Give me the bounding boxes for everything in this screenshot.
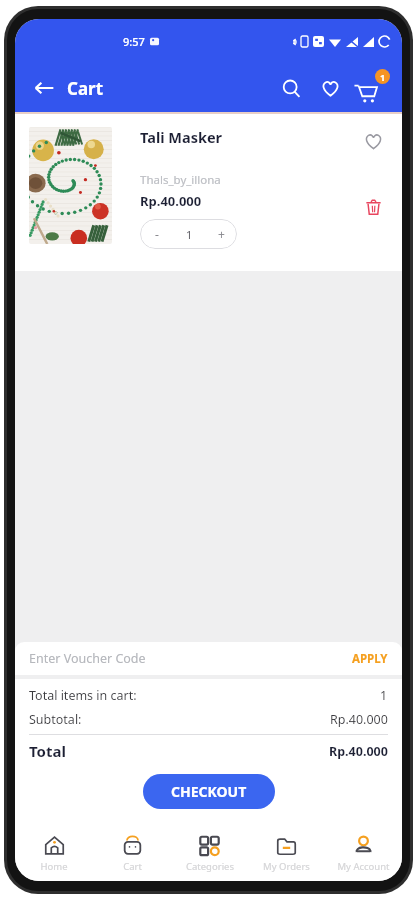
button[interactable]: Decrease quantity: [140, 219, 173, 249]
staticText: 1: [186, 227, 193, 242]
button[interactable]: Increase quantity: [205, 219, 237, 249]
staticText: Total items in cart:: [29, 687, 137, 704]
staticText: Enter Voucher Code: [29, 650, 146, 667]
button[interactable]: APPLY: [352, 642, 388, 675]
button[interactable]: Home: [15, 825, 93, 881]
staticText: Cart: [67, 77, 104, 100]
button[interactable]: Cart: [93, 825, 171, 881]
button[interactable]: Search: [276, 73, 306, 103]
staticText: Categories: [186, 860, 234, 873]
staticText: Subtotal:: [29, 711, 82, 728]
button[interactable]: Wishlist: [315, 73, 345, 103]
button[interactable]: Tali Masker: [15, 114, 402, 271]
staticText: Total: [29, 741, 66, 761]
staticText: My Account: [337, 860, 390, 873]
button[interactable]: Enter Voucher Code: [29, 642, 352, 675]
staticText: APPLY: [352, 651, 388, 667]
staticText: CHECKOUT: [171, 782, 247, 801]
staticText: Rp.40.000: [329, 743, 388, 760]
staticText: -: [155, 226, 159, 242]
button[interactable]: CHECKOUT: [143, 774, 275, 809]
button[interactable]: Back: [31, 75, 104, 101]
staticText: Cart: [123, 860, 142, 873]
button[interactable]: My Account: [325, 825, 402, 881]
button[interactable]: Add to wishlist: [359, 127, 387, 155]
staticText: 1: [380, 71, 386, 83]
other: Back: [31, 75, 57, 101]
staticText: Tali Masker: [140, 127, 223, 147]
button[interactable]: Cart: [354, 71, 388, 105]
staticText: Thals_by_illona: [140, 172, 221, 188]
button[interactable]: Remove item: [359, 193, 387, 221]
staticText: Rp.40.000: [140, 192, 202, 210]
staticText: +: [218, 226, 225, 242]
staticText: 9:57: [123, 34, 145, 49]
staticText: My Orders: [263, 860, 310, 873]
staticText: Home: [40, 860, 68, 873]
button[interactable]: Categories: [171, 825, 248, 881]
button[interactable]: My Orders: [248, 825, 325, 881]
staticText: 1: [380, 687, 388, 704]
staticText: Rp.40.000: [330, 711, 388, 728]
